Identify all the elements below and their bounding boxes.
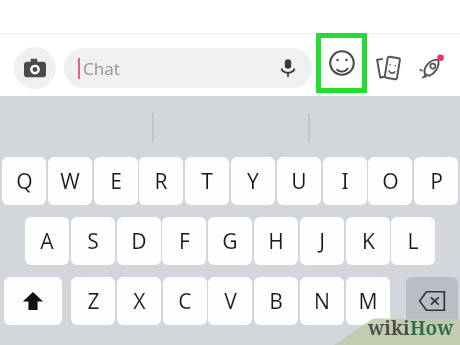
button[interactable]: Shift bbox=[4, 277, 62, 325]
button[interactable]: H bbox=[254, 217, 298, 265]
button[interactable]: W bbox=[48, 157, 92, 205]
button[interactable]: Voice input bbox=[274, 54, 302, 82]
staticText: P bbox=[430, 167, 443, 196]
staticText: I bbox=[341, 167, 349, 196]
button[interactable]: T bbox=[185, 157, 229, 205]
button[interactable]: G bbox=[208, 217, 252, 265]
staticText: X bbox=[133, 287, 146, 316]
button[interactable]: Chat bbox=[64, 48, 312, 88]
staticText: wiki bbox=[368, 315, 410, 341]
staticText: D bbox=[131, 227, 147, 256]
staticText: T bbox=[201, 167, 213, 196]
staticText: Chat bbox=[83, 57, 120, 80]
staticText: How bbox=[410, 315, 454, 341]
staticText: F bbox=[179, 227, 190, 256]
staticText: Z bbox=[87, 287, 100, 316]
staticText: H bbox=[268, 227, 284, 256]
button[interactable]: R bbox=[139, 157, 183, 205]
staticText: E bbox=[110, 167, 122, 196]
staticText: A bbox=[40, 227, 54, 256]
button[interactable]: F bbox=[162, 217, 206, 265]
button[interactable]: P bbox=[414, 157, 458, 205]
button[interactable]: Games bbox=[410, 47, 452, 89]
button[interactable]: Stickers bbox=[369, 48, 409, 88]
button[interactable]: B bbox=[254, 277, 298, 325]
staticText: Y bbox=[247, 167, 259, 196]
staticText: U bbox=[291, 167, 307, 196]
staticText: L bbox=[407, 227, 419, 256]
button[interactable]: C bbox=[163, 277, 207, 325]
button[interactable]: M bbox=[346, 277, 390, 325]
button[interactable]: Emoji bbox=[316, 33, 367, 93]
staticText: R bbox=[154, 167, 168, 196]
button[interactable]: X bbox=[117, 277, 161, 325]
staticText: N bbox=[314, 287, 330, 316]
button[interactable]: S bbox=[71, 217, 115, 265]
button[interactable]: J bbox=[300, 217, 344, 265]
staticText: W bbox=[60, 167, 80, 196]
button[interactable]: Q bbox=[2, 157, 46, 205]
staticText: B bbox=[269, 287, 283, 316]
button[interactable]: K bbox=[346, 217, 390, 265]
button[interactable]: O bbox=[368, 157, 412, 205]
staticText: S bbox=[87, 227, 99, 256]
staticText: M bbox=[358, 287, 378, 316]
staticText: C bbox=[178, 287, 192, 316]
button[interactable]: V bbox=[208, 277, 252, 325]
staticText: Q bbox=[16, 167, 33, 196]
button[interactable]: E bbox=[94, 157, 138, 205]
button[interactable]: Backspace bbox=[406, 277, 458, 325]
button[interactable]: L bbox=[391, 217, 435, 265]
staticText: J bbox=[319, 227, 325, 256]
staticText: K bbox=[362, 227, 375, 256]
staticText: G bbox=[222, 227, 238, 256]
button[interactable]: I bbox=[323, 157, 367, 205]
button[interactable]: A bbox=[25, 217, 69, 265]
button[interactable]: Z bbox=[71, 277, 115, 325]
button[interactable]: N bbox=[300, 277, 344, 325]
button[interactable]: Y bbox=[231, 157, 275, 205]
button[interactable]: Camera bbox=[14, 47, 56, 89]
button[interactable]: D bbox=[117, 217, 161, 265]
button[interactable]: U bbox=[277, 157, 321, 205]
staticText: V bbox=[224, 287, 237, 316]
staticText: O bbox=[382, 167, 399, 196]
